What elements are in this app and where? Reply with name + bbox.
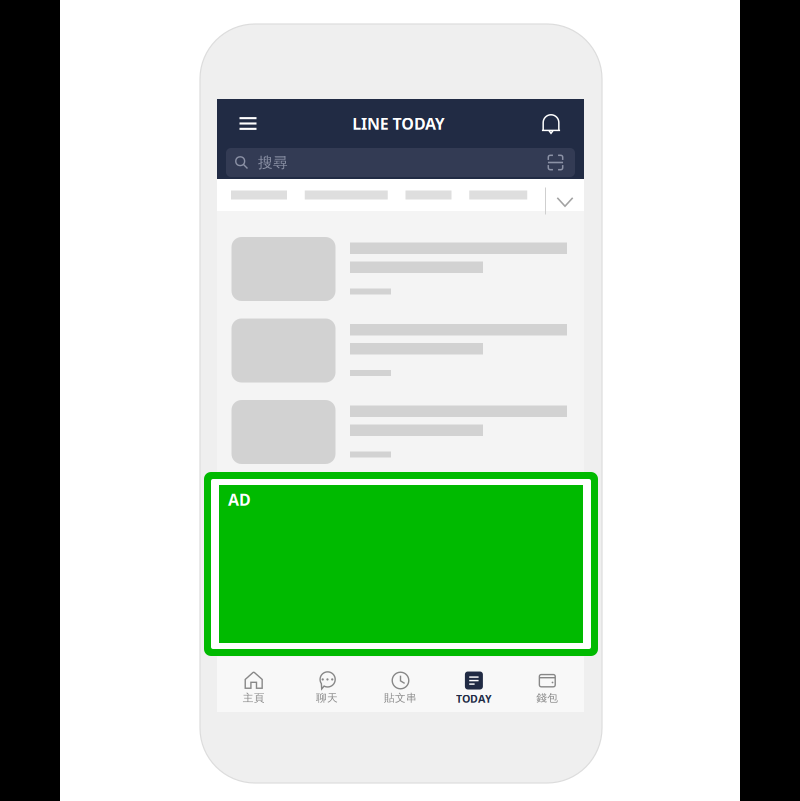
button[interactable] [231, 400, 584, 464]
staticText: AD [228, 489, 251, 510]
staticText: 聊天 [316, 691, 338, 705]
button[interactable]: 主頁 [217, 657, 290, 712]
button[interactable]: Category [469, 179, 527, 211]
button[interactable]: Notifications [518, 99, 584, 148]
button[interactable]: Category [305, 179, 388, 211]
button[interactable]: AD [219, 485, 583, 643]
button[interactable]: TODAY [437, 657, 511, 712]
staticText: 錢包 [536, 691, 558, 705]
staticText: TODAY [456, 691, 492, 706]
staticText: LINE TODAY [352, 113, 445, 134]
button[interactable]: 搜尋 [226, 148, 575, 177]
button[interactable]: Category [231, 179, 287, 211]
staticText: 搜尋 [258, 153, 288, 171]
staticText: 主頁 [243, 691, 265, 705]
button[interactable]: 聊天 [290, 657, 364, 712]
button[interactable]: Menu [217, 99, 279, 148]
button[interactable] [231, 237, 584, 301]
button[interactable]: Show all categories [546, 179, 584, 211]
button[interactable]: Category [405, 179, 451, 211]
button[interactable]: 貼文串 [364, 657, 437, 712]
button[interactable]: 錢包 [511, 657, 584, 712]
staticText: 貼文串 [384, 691, 417, 705]
button[interactable] [231, 318, 584, 382]
